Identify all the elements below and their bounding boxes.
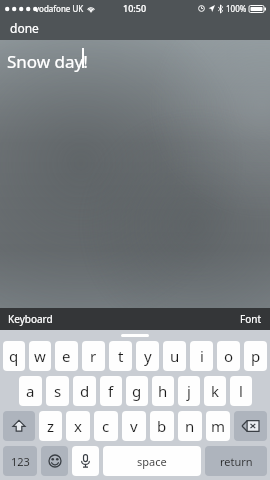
staticText: t (118, 346, 124, 366)
button[interactable]: Emoji (41, 446, 68, 476)
staticText: u (170, 346, 180, 366)
button[interactable]: y (136, 341, 159, 371)
staticText: d (80, 381, 90, 401)
staticText: Snow day! (7, 50, 88, 73)
button[interactable]: return (205, 446, 267, 476)
staticText: r (90, 346, 97, 366)
staticText: e (62, 346, 71, 366)
button[interactable]: p (244, 341, 267, 371)
button[interactable]: d (73, 376, 96, 406)
button[interactable]: h (152, 376, 174, 406)
staticText: n (185, 416, 195, 436)
button[interactable]: v (122, 411, 146, 441)
button[interactable]: Font (232, 309, 270, 329)
staticText: i (200, 346, 204, 366)
staticText: z (47, 416, 55, 436)
staticText: 100% (226, 3, 247, 14)
button[interactable]: 123 (3, 446, 37, 476)
button[interactable]: t (109, 341, 132, 371)
staticText: w (34, 346, 46, 366)
staticText: s (54, 381, 62, 401)
button[interactable]: m (206, 411, 230, 441)
staticText: j (187, 381, 191, 401)
staticText: Keyboard (8, 312, 53, 326)
staticText: b (157, 416, 167, 436)
button[interactable]: j (178, 376, 200, 406)
staticText: 10:50 (123, 2, 147, 14)
staticText: h (158, 381, 168, 401)
button[interactable]: n (178, 411, 202, 441)
button[interactable]: c (94, 411, 118, 441)
staticText: vodafone UK (35, 3, 84, 14)
button[interactable]: a (19, 376, 42, 406)
staticText: space (137, 454, 167, 469)
button[interactable]: k (204, 376, 226, 406)
staticText: g (132, 381, 142, 401)
button[interactable]: Dictation (72, 446, 99, 476)
staticText: Font (240, 312, 262, 326)
button[interactable]: Backspace (234, 411, 267, 441)
button[interactable]: s (46, 376, 69, 406)
button[interactable]: q (3, 341, 25, 371)
button[interactable]: done (0, 16, 49, 40)
staticText: v (130, 416, 138, 436)
button[interactable]: x (66, 411, 90, 441)
staticText: k (211, 381, 220, 401)
staticText: return (220, 454, 253, 469)
button[interactable]: o (217, 341, 240, 371)
staticText: 123 (11, 454, 30, 469)
button[interactable]: f (100, 376, 122, 406)
button[interactable]: r (82, 341, 105, 371)
button[interactable]: g (126, 376, 148, 406)
staticText: x (74, 416, 82, 436)
staticText: c (102, 416, 110, 436)
button[interactable]: w (29, 341, 51, 371)
staticText: y (144, 346, 152, 366)
button[interactable]: space (103, 446, 201, 476)
staticText: a (26, 381, 35, 401)
button[interactable]: e (55, 341, 78, 371)
button[interactable]: l (230, 376, 252, 406)
staticText: done (10, 20, 39, 36)
staticText: l (239, 381, 243, 401)
staticText: p (251, 346, 261, 366)
button[interactable]: b (150, 411, 174, 441)
button[interactable]: i (190, 341, 213, 371)
staticText: q (9, 346, 19, 366)
button[interactable]: Shift (3, 411, 35, 441)
button[interactable]: Keyboard (0, 309, 61, 329)
button[interactable]: z (39, 411, 62, 441)
staticText: o (224, 346, 234, 366)
staticText: m (211, 416, 226, 436)
staticText: f (108, 381, 114, 401)
button[interactable]: u (163, 341, 186, 371)
